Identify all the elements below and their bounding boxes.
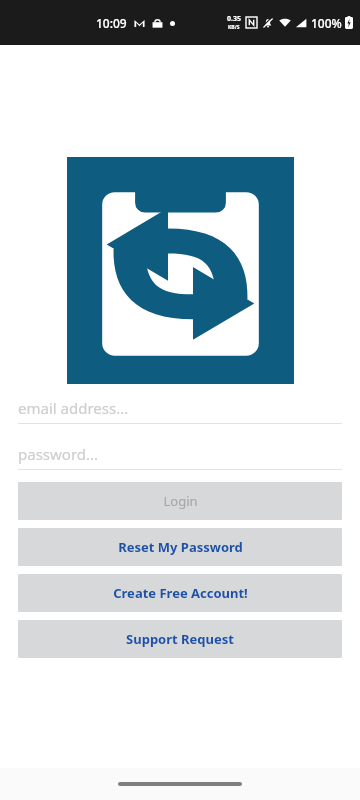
staticText: KB/S [228, 24, 240, 31]
staticText: Login [163, 492, 198, 510]
button[interactable]: password... [18, 444, 342, 470]
staticText: email address... [18, 398, 129, 418]
staticText: 10:09 [96, 15, 127, 31]
staticText: Support Request [126, 630, 234, 648]
staticText: password... [18, 444, 99, 464]
button[interactable]: Create Free Account! [18, 574, 342, 612]
staticText: Reset My Password [118, 538, 243, 556]
button[interactable]: Support Request [18, 620, 342, 658]
button[interactable]: Login [18, 482, 342, 520]
staticText: Create Free Account! [113, 584, 248, 602]
staticText: 100% [311, 15, 342, 31]
button[interactable]: Reset My Password [18, 528, 342, 566]
button[interactable]: email address... [18, 398, 342, 424]
staticText: 0.35 [227, 14, 241, 24]
